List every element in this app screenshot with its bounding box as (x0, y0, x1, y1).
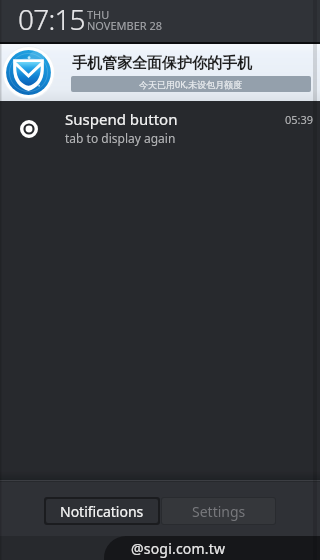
staticText: Notifications (60, 502, 144, 521)
button[interactable]: 手机管家全面保护你的手机 (0, 44, 320, 101)
staticText: Settings (192, 502, 246, 521)
staticText: tab to display again (65, 130, 176, 146)
staticText: 手机管家全面保护你的手机 (72, 54, 252, 73)
staticText: @sogi.com.tw (131, 539, 226, 558)
staticText: Suspend button (65, 109, 178, 129)
button[interactable]: Notification icon (0, 101, 320, 155)
staticText: NOVEMBER 28 (87, 18, 163, 33)
other: Notification icon (20, 120, 38, 138)
staticText: 05:39 (285, 112, 314, 127)
staticText: 今天已用0K,未设包月额度 (139, 78, 243, 90)
staticText: THU (87, 7, 110, 22)
staticText: 07:15 (18, 0, 85, 38)
button[interactable]: Settings (162, 498, 275, 524)
button[interactable]: Notifications (46, 499, 158, 523)
